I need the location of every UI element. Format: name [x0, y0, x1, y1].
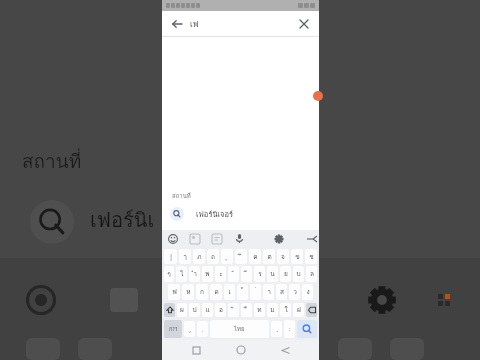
staticText: ำ: [193, 269, 197, 279]
button[interactable]: เฟอร์นิเจอร์: [162, 204, 319, 224]
button[interactable]: ก: [196, 284, 208, 300]
button[interactable]: Recents: [186, 340, 206, 360]
button[interactable]: ะ: [215, 266, 226, 282]
button[interactable]: ุ: [221, 249, 233, 264]
button[interactable]: ึ: [235, 249, 247, 264]
button[interactable]: ี: [241, 266, 252, 282]
staticText: ม: [270, 305, 275, 315]
button[interactable]: Back: [275, 340, 295, 360]
button[interactable]: .: [271, 321, 282, 337]
staticText: ย: [284, 269, 288, 279]
staticText: ะ: [219, 269, 223, 279]
button[interactable]: ก?1: [164, 320, 182, 338]
button[interactable]: พ: [202, 266, 213, 282]
button[interactable]: น: [267, 266, 278, 282]
button[interactable]: ้: [237, 284, 248, 300]
button[interactable]: ถ: [207, 249, 219, 264]
button[interactable]: ข: [291, 249, 303, 264]
button[interactable]: Back: [168, 15, 186, 33]
button[interactable]: ย: [280, 266, 291, 282]
button[interactable]: ค: [249, 249, 261, 264]
button[interactable]: ป: [189, 303, 200, 317]
button[interactable]: ๆ: [164, 266, 174, 282]
button[interactable]: Sticker: [184, 230, 206, 247]
staticText: ข: [295, 252, 300, 262]
staticText: ด: [214, 287, 219, 297]
button[interactable]: ว: [289, 284, 300, 300]
staticText: ๆ: [167, 269, 171, 279]
button[interactable]: ห: [182, 284, 194, 300]
staticText: ไ: [180, 269, 184, 279]
button[interactable]: ๅ: [179, 249, 191, 264]
staticText: ก: [200, 287, 204, 297]
button[interactable]: Clipboard: [206, 230, 228, 247]
button[interactable]: ไ: [176, 266, 187, 282]
button[interactable]: Emoji: [162, 230, 184, 247]
staticText: เฟอร์นิเ: [90, 204, 155, 236]
button[interactable]: ง: [302, 284, 313, 300]
button[interactable]: ล: [306, 266, 317, 282]
staticText: จ: [281, 252, 285, 262]
button[interactable]: ท: [254, 303, 265, 317]
staticText: ๅ: [183, 252, 187, 262]
button[interactable]: ม: [267, 303, 278, 317]
staticText: :: [289, 325, 291, 333]
staticText: ช: [309, 252, 314, 262]
staticText: ล: [310, 269, 314, 279]
staticText: า: [267, 287, 271, 297]
button[interactable]: ฺ: [197, 321, 208, 337]
button[interactable]: อ: [215, 303, 226, 317]
staticText: .: [276, 325, 278, 334]
button[interactable]: ส: [276, 284, 287, 300]
button[interactable]: ต: [263, 249, 275, 264]
staticText: ต: [267, 252, 272, 262]
button[interactable]: บ: [293, 266, 304, 282]
staticText: ก?1: [169, 325, 178, 334]
staticText: ง: [306, 287, 310, 297]
button[interactable]: Shift: [164, 303, 175, 317]
button[interactable]: ภ: [193, 249, 205, 264]
button[interactable]: Backspace: [306, 303, 317, 317]
button[interactable]: Clear: [295, 15, 313, 33]
button[interactable]: ั: [228, 266, 239, 282]
button[interactable]: More: [304, 230, 319, 247]
button[interactable]: ่: [250, 284, 261, 300]
staticText: บ: [296, 269, 301, 279]
button[interactable]: ฟ: [168, 284, 180, 300]
staticText: สถานที่: [22, 146, 82, 176]
button[interactable]: |: [164, 249, 177, 264]
staticText: ห: [186, 287, 191, 297]
button[interactable]: ร: [254, 266, 265, 282]
staticText: เฟ: [190, 18, 199, 31]
staticText: ถ: [211, 252, 215, 262]
staticText: น: [270, 269, 275, 279]
button[interactable]: ,: [184, 321, 195, 337]
button[interactable]: ิ: [228, 303, 239, 317]
staticText: |: [169, 252, 173, 261]
button[interactable]: ใ: [280, 303, 291, 317]
staticText: เ: [228, 287, 231, 297]
button[interactable]: Emoji key: [284, 320, 295, 338]
button[interactable]: ช: [305, 249, 317, 264]
staticText: ผ: [180, 305, 184, 315]
button[interactable]: เ: [224, 284, 235, 300]
button[interactable]: ำ: [189, 266, 200, 282]
button[interactable]: ผ: [177, 303, 187, 317]
button[interactable]: Home: [231, 340, 251, 360]
staticText: ฟ: [172, 287, 177, 297]
button[interactable]: จ: [277, 249, 289, 264]
button[interactable]: า: [263, 284, 274, 300]
button[interactable]: Settings: [268, 230, 290, 247]
button[interactable]: Search: [297, 320, 317, 338]
button[interactable]: ฝ: [293, 303, 304, 317]
button[interactable]: แ: [202, 303, 213, 317]
staticText: ไทย: [234, 324, 245, 334]
button[interactable]: ไทย: [210, 320, 269, 338]
staticText: อ: [219, 305, 223, 315]
button[interactable]: Voice input: [228, 230, 250, 247]
button[interactable]: ื: [241, 303, 252, 317]
staticText: ป: [192, 305, 197, 315]
button[interactable]: ด: [210, 284, 222, 300]
staticText: ฝ: [297, 305, 301, 315]
staticText: ภ: [197, 252, 202, 262]
